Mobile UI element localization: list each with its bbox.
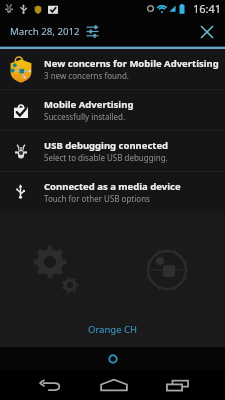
staticText: New concerns for Mobile Advertising [44, 57, 219, 70]
button[interactable]: Close notifications [0, 347, 225, 370]
staticText: March 28, 2012 [10, 25, 80, 38]
staticText: USB debugging connected [44, 139, 169, 152]
button[interactable]: Settings [86, 25, 99, 38]
staticText: 16:41 [193, 1, 222, 16]
button[interactable]: New concerns for Mobile Advertising [0, 49, 225, 89]
staticText: Select to disable USB debugging. [44, 152, 168, 163]
button[interactable]: Home [86, 370, 142, 400]
staticText: Touch for other USB options [44, 193, 150, 204]
staticText: Mobile Advertising [44, 98, 134, 111]
staticText: Connected as a media device [44, 180, 181, 193]
staticText: 3 new concerns found. [44, 70, 129, 81]
staticText: Orange CH [0, 323, 225, 336]
staticText: Successfully installed. [44, 111, 126, 122]
button[interactable]: Connected as a media device [0, 172, 225, 211]
button[interactable]: Clear all notifications [201, 26, 213, 38]
button[interactable]: Mobile Advertising [0, 90, 225, 130]
button[interactable]: USB debugging connected [0, 131, 225, 171]
button[interactable]: Recent apps [149, 370, 205, 400]
button[interactable]: Back [22, 370, 78, 400]
